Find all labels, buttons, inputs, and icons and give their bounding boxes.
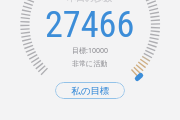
staticText: 私の目標 <box>71 85 110 97</box>
staticText: 本日の歩数 <box>67 0 113 3</box>
staticText: 非常に活動 <box>72 59 108 68</box>
staticText: 目標:10000 <box>72 46 108 56</box>
staticText: 27466 <box>45 3 135 45</box>
button[interactable]: 私の目標 <box>55 82 125 99</box>
